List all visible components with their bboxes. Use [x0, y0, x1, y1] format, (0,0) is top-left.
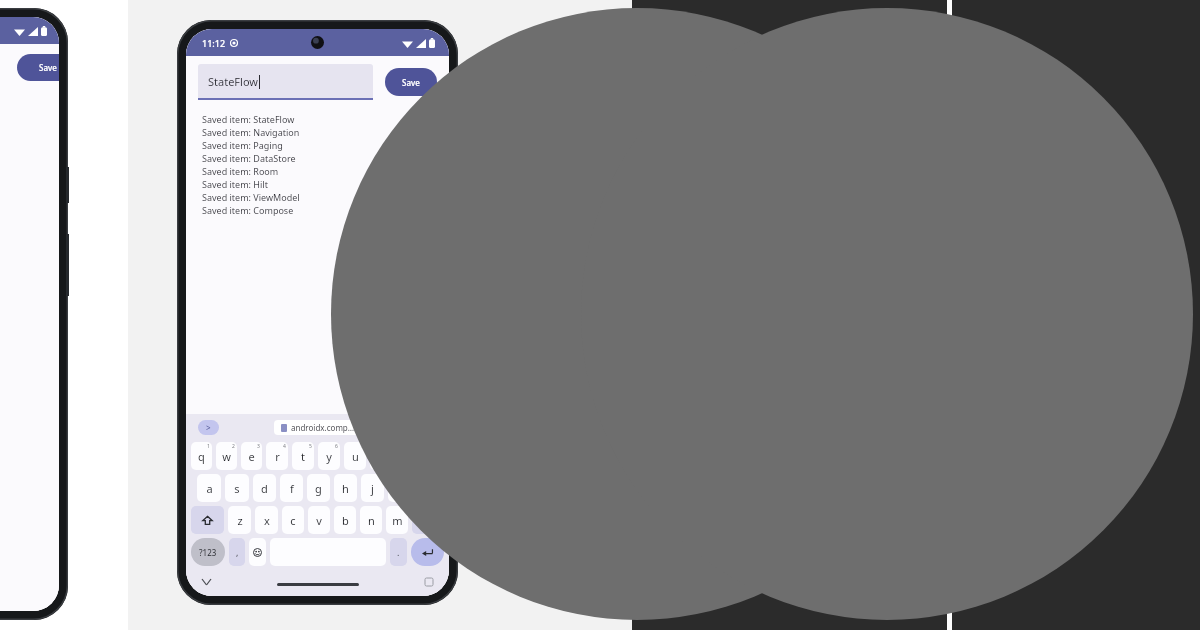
button[interactable]: r [266, 442, 288, 470]
button[interactable]: Saved item: ViewModel [202, 190, 449, 203]
button[interactable]: a [197, 474, 221, 502]
button[interactable]: Backspace [412, 506, 444, 534]
button[interactable]: Media panel [952, 0, 1200, 630]
button[interactable]: y [318, 442, 340, 470]
button[interactable]: v [308, 506, 330, 534]
button[interactable]: Emoji [249, 538, 266, 566]
button[interactable]: k [388, 474, 411, 502]
button[interactable]: Saved item: StateFlow [202, 112, 449, 125]
button[interactable]: z [228, 506, 251, 534]
button[interactable]: Save [385, 68, 437, 96]
button[interactable]: Saved item: Navigation [202, 125, 449, 138]
button[interactable]: Comma [229, 538, 245, 566]
button[interactable]: q [191, 442, 212, 470]
button[interactable]: Saved item: Paging [202, 138, 449, 151]
button[interactable]: m [386, 506, 408, 534]
button[interactable]: StateFlow [198, 64, 373, 100]
button[interactable]: t [292, 442, 314, 470]
button[interactable]: s [225, 474, 249, 502]
button[interactable]: g [307, 474, 330, 502]
button[interactable]: Hide keyboard [202, 579, 211, 585]
button[interactable]: i [370, 442, 392, 470]
button[interactable]: Saved item: DataStore [202, 151, 449, 164]
button[interactable]: Keyboard settings [425, 578, 433, 586]
button[interactable]: ?123 [191, 538, 225, 566]
button[interactable]: Save [17, 54, 59, 81]
button[interactable]: Period [390, 538, 407, 566]
button[interactable]: x [255, 506, 278, 534]
button[interactable]: Enter [411, 538, 444, 566]
button[interactable]: h [334, 474, 357, 502]
button[interactable]: Saved item: Compose [202, 203, 449, 216]
button[interactable]: More suggestions [198, 420, 219, 435]
button[interactable]: e [241, 442, 262, 470]
button[interactable]: androidx.comp… [274, 420, 362, 435]
button[interactable]: f [280, 474, 303, 502]
button[interactable]: c [282, 506, 304, 534]
button[interactable]: u [344, 442, 366, 470]
button[interactable]: b [334, 506, 356, 534]
button[interactable]: Saved item: Hilt [202, 177, 449, 190]
button[interactable]: Shift [191, 506, 224, 534]
button[interactable]: w [216, 442, 237, 470]
button[interactable]: Media panel [632, 0, 947, 630]
button[interactable]: n [360, 506, 382, 534]
button[interactable]: Saved item: Room [202, 164, 449, 177]
button[interactable]: j [361, 474, 384, 502]
button[interactable]: d [253, 474, 276, 502]
